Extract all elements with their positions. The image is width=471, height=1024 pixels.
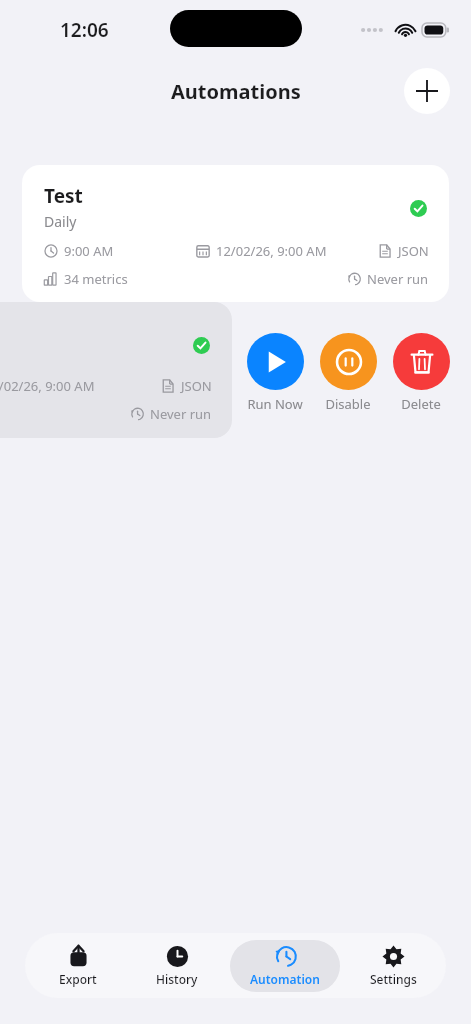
staticText: Settings [370, 971, 417, 987]
staticText: Automation [250, 971, 320, 987]
staticText: 12/02/26, 9:00 AM [0, 377, 95, 395]
button[interactable]: Automation [230, 940, 340, 992]
staticText: 34 metrics [64, 270, 128, 288]
button[interactable]: History [131, 940, 223, 992]
button[interactable]: Add automation [404, 68, 450, 114]
button[interactable]: Settings [347, 940, 439, 992]
staticText: Never run [367, 270, 429, 288]
staticText: Never run [150, 405, 212, 423]
staticText: Delete [401, 395, 441, 413]
button[interactable]: Test [22, 165, 449, 302]
staticText: 12:06 [60, 17, 109, 43]
staticText: 9:00 AM [64, 242, 114, 260]
staticText: Daily [44, 212, 77, 231]
staticText: 12/02/26, 9:00 AM [216, 242, 327, 260]
button[interactable]: Export [32, 940, 124, 992]
button[interactable]: Delete [387, 333, 455, 413]
staticText: JSON [398, 242, 429, 260]
staticText: Test [44, 183, 83, 209]
staticText: JSON [181, 377, 212, 395]
button[interactable]: 9:00 AM [0, 302, 232, 438]
staticText: Run Now [247, 395, 303, 413]
staticText: Export [59, 971, 97, 987]
button[interactable]: Run Now [241, 333, 309, 413]
staticText: Disable [325, 395, 371, 413]
staticText: History [156, 971, 198, 987]
staticText: Automations [171, 78, 301, 105]
button[interactable]: Disable [314, 333, 382, 413]
